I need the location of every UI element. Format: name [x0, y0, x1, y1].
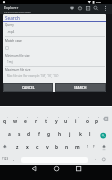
staticText: 3 [27, 116, 29, 119]
button[interactable]: u [62, 118, 70, 124]
staticText: 6 [58, 116, 60, 119]
button[interactable] [5, 46, 9, 50]
staticText: 2 [17, 116, 19, 119]
button[interactable]: j [66, 131, 74, 137]
staticText: w [13, 118, 18, 124]
button[interactable]: p [93, 118, 101, 124]
button[interactable]: w [11, 118, 19, 124]
button[interactable]: h [56, 131, 64, 137]
staticText: b [55, 144, 59, 150]
staticText: Maximum file size [5, 68, 31, 72]
staticText: g [47, 131, 51, 137]
staticText: CANCEL [22, 86, 35, 90]
staticText: d [27, 131, 31, 137]
staticText: 8 [78, 116, 80, 119]
button[interactable]: SEARCH [55, 83, 106, 92]
button[interactable]: f [35, 131, 43, 137]
staticText: l [89, 131, 91, 137]
button[interactable]: ? [90, 144, 98, 150]
button[interactable]: t [42, 118, 50, 124]
staticText: . [95, 157, 96, 161]
staticText: s [18, 131, 21, 137]
staticText: 5 [47, 116, 49, 119]
button[interactable]: n [63, 144, 71, 150]
button[interactable]: b [53, 144, 61, 150]
staticText: f [38, 131, 40, 137]
button[interactable]: i [72, 118, 80, 124]
staticText: ? [93, 145, 95, 149]
staticText: Search [5, 15, 20, 21]
staticText: j [69, 131, 71, 137]
staticText: Minimum file size [5, 54, 30, 58]
staticText: c [36, 144, 39, 150]
staticText: e [24, 118, 27, 124]
button[interactable]: k [76, 131, 84, 137]
staticText: x [26, 144, 29, 150]
button[interactable]: o [83, 118, 91, 124]
staticText: 9 [88, 116, 90, 119]
staticText: 1 [7, 116, 9, 119]
button[interactable]: y [52, 118, 60, 124]
staticText: 5:00 [96, 0, 101, 3]
button[interactable]: v [43, 144, 51, 150]
button[interactable]: z [13, 144, 21, 150]
button[interactable] [38, 165, 75, 180]
staticText: r [35, 118, 38, 124]
button[interactable]: l [86, 131, 94, 137]
staticText: t [45, 118, 48, 124]
staticText: ?123 [2, 157, 9, 161]
staticText: 4 [37, 116, 39, 119]
staticText: , [13, 157, 14, 161]
button[interactable]: s [15, 131, 23, 137]
staticText: q [3, 118, 7, 124]
staticText: ! [87, 145, 88, 149]
button[interactable] [0, 165, 38, 180]
staticText: u [64, 118, 68, 124]
staticText: Explorer [4, 5, 19, 10]
staticText: sdcard/Download/video [4, 10, 31, 13]
staticText: Query [5, 23, 14, 27]
button[interactable]: a [5, 131, 13, 137]
staticText: h [58, 131, 62, 137]
staticText: 0 [98, 116, 100, 119]
staticText: k [79, 131, 82, 137]
button[interactable]: q [1, 118, 9, 124]
button[interactable]: CANCEL [3, 83, 53, 92]
button[interactable]: , [9, 156, 17, 162]
button[interactable]: c [33, 144, 41, 150]
button[interactable]: e [21, 118, 29, 124]
staticText: i [75, 118, 77, 124]
staticText: v [46, 144, 49, 150]
staticText: m [75, 144, 80, 150]
staticText: 1mj [7, 60, 13, 64]
button[interactable]: d [25, 131, 33, 137]
staticText: z [16, 144, 19, 150]
staticText: p [95, 118, 99, 124]
staticText: SEARCH [74, 86, 87, 90]
button[interactable]: r [32, 118, 40, 124]
button[interactable]: x [23, 144, 31, 150]
staticText: o [86, 118, 89, 124]
staticText: Match case [5, 39, 22, 43]
staticText: y [55, 118, 58, 124]
button[interactable]: g [45, 131, 53, 137]
button[interactable]: . [91, 156, 99, 162]
staticText: Max file size (for example: '1M', '1K', … [7, 74, 59, 78]
button[interactable]: ! [83, 144, 91, 150]
staticText: a [8, 131, 11, 137]
staticText: n [65, 144, 69, 150]
staticText: .mp4 [7, 30, 15, 34]
staticText: 7 [68, 116, 70, 119]
button[interactable]: m [73, 144, 81, 150]
button[interactable] [75, 165, 112, 180]
